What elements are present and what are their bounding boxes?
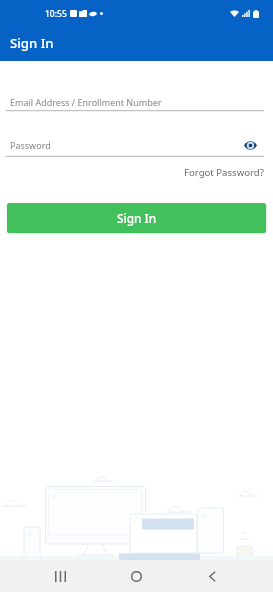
staticText: Forgot Password? xyxy=(184,166,264,179)
button[interactable]: Show password xyxy=(241,136,259,154)
button[interactable]: Forgot Password? xyxy=(0,163,273,181)
button[interactable]: Recents xyxy=(42,560,78,592)
button[interactable]: Back xyxy=(194,560,230,592)
button[interactable]: Home xyxy=(118,560,154,592)
staticText: 10:55 xyxy=(45,8,67,20)
staticText: Sign In xyxy=(10,34,54,52)
staticText: Sign In xyxy=(117,210,157,226)
staticText: Password xyxy=(10,139,51,151)
button[interactable]: Sign In xyxy=(7,203,266,233)
staticText: Email Address / Enrollment Number xyxy=(10,96,162,108)
